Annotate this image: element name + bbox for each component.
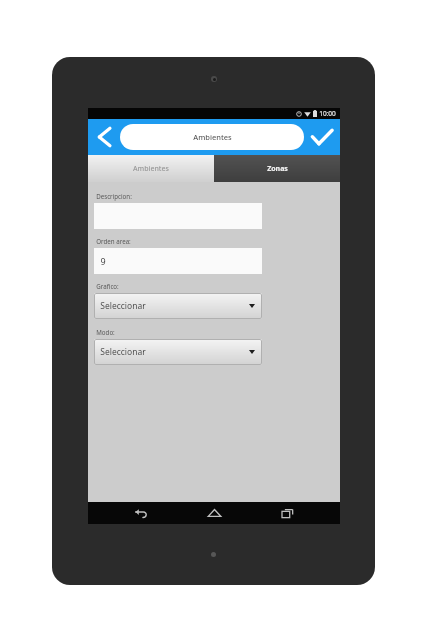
button[interactable]: Back [88,119,120,155]
button[interactable]: Seleccionar [94,293,262,319]
button[interactable]: Seleccionar [94,339,262,365]
button[interactable]: Ambientes [88,155,214,182]
button[interactable]: Zonas [214,155,340,182]
staticText: 9 [100,255,106,267]
staticText: Seleccionar [100,300,146,312]
button[interactable]: 9 [94,248,262,274]
staticText: 10:00 [319,109,336,118]
staticText: Seleccionar [100,346,146,358]
staticText: Grafico: [96,282,119,290]
button[interactable]: Ambientes [120,124,304,150]
staticText: Modo: [96,328,115,336]
staticText: Ambientes [193,132,232,142]
staticText: Orden area: [96,237,131,245]
staticText: Descripcion: [96,192,132,200]
button[interactable]: Recent apps [274,502,300,524]
staticText: Ambientes [133,164,169,174]
button[interactable]: Home [201,502,227,524]
button[interactable]: Save [304,119,340,155]
button[interactable]: Back [128,502,154,524]
staticText: Zonas [267,164,288,174]
